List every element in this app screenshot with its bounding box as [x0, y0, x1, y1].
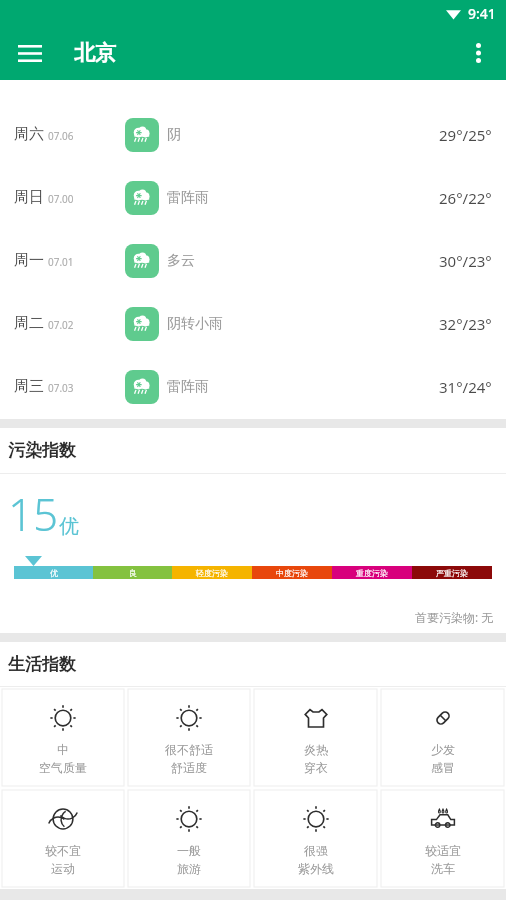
staticText: 07.00	[48, 192, 74, 206]
button[interactable]: More options	[460, 35, 496, 71]
button[interactable]: 炎热	[254, 689, 377, 786]
staticText: 运动	[51, 861, 75, 876]
staticText: 首要污染物: 无	[415, 609, 494, 625]
staticText: 生活指数	[8, 654, 76, 675]
button[interactable]: 少发	[381, 689, 504, 786]
staticText: 优	[59, 514, 79, 539]
staticText: 26°/22°	[439, 188, 492, 208]
button[interactable]: Open navigation menu	[14, 37, 46, 69]
staticText: 北京	[74, 40, 116, 66]
staticText: 良	[129, 568, 137, 578]
staticText: 周六	[14, 125, 44, 144]
staticText: 15	[8, 484, 59, 544]
button[interactable]: 很不舒适	[128, 689, 250, 786]
staticText: 周三	[14, 377, 44, 396]
staticText: 洗车	[431, 861, 455, 876]
button[interactable]: 周一	[0, 229, 506, 292]
staticText: 很强	[304, 843, 328, 858]
button[interactable]: 较适宜	[381, 790, 504, 887]
button[interactable]: 周三	[0, 355, 506, 418]
staticText: 07.01	[48, 255, 74, 269]
staticText: 严重污染	[436, 568, 468, 578]
staticText: 雷阵雨	[167, 189, 209, 207]
staticText: 感冒	[431, 760, 455, 775]
staticText: 多云	[167, 252, 195, 270]
staticText: 较不宜	[45, 843, 81, 858]
staticText: 中度污染	[276, 568, 308, 578]
staticText: 少发	[431, 742, 455, 757]
staticText: 周日	[14, 188, 44, 207]
staticText: 07.02	[48, 318, 74, 332]
staticText: 07.06	[48, 129, 74, 143]
staticText: 很不舒适	[165, 742, 213, 757]
button[interactable]: 周二	[0, 292, 506, 355]
button[interactable]: 较不宜	[2, 790, 124, 887]
staticText: 污染指数	[8, 440, 76, 461]
staticText: 31°/24°	[439, 377, 492, 397]
staticText: 周二	[14, 314, 44, 333]
staticText: 紫外线	[298, 861, 334, 876]
staticText: 阴	[167, 126, 181, 144]
staticText: 中	[57, 742, 69, 757]
staticText: 30°/23°	[439, 251, 492, 271]
staticText: 舒适度	[171, 760, 207, 775]
staticText: 阴转小雨	[167, 315, 223, 333]
button[interactable]: 一般	[128, 790, 250, 887]
staticText: 29°/25°	[439, 125, 492, 145]
button[interactable]: 很强	[254, 790, 377, 887]
staticText: 旅游	[177, 861, 201, 876]
button[interactable]: 周日	[0, 166, 506, 229]
staticText: 周一	[14, 251, 44, 270]
staticText: 雷阵雨	[167, 378, 209, 396]
button[interactable]: 周六	[0, 103, 506, 166]
staticText: 优	[50, 568, 58, 578]
staticText: 32°/23°	[439, 314, 492, 334]
staticText: 07.03	[48, 381, 74, 395]
staticText: 较适宜	[425, 843, 461, 858]
staticText: 重度污染	[356, 568, 388, 578]
button[interactable]: 中	[2, 689, 124, 786]
staticText: 穿衣	[304, 760, 328, 775]
staticText: 轻度污染	[196, 568, 228, 578]
staticText: 炎热	[304, 742, 328, 757]
staticText: 9:41	[468, 4, 496, 23]
staticText: 空气质量	[39, 760, 87, 775]
staticText: 一般	[177, 843, 201, 858]
